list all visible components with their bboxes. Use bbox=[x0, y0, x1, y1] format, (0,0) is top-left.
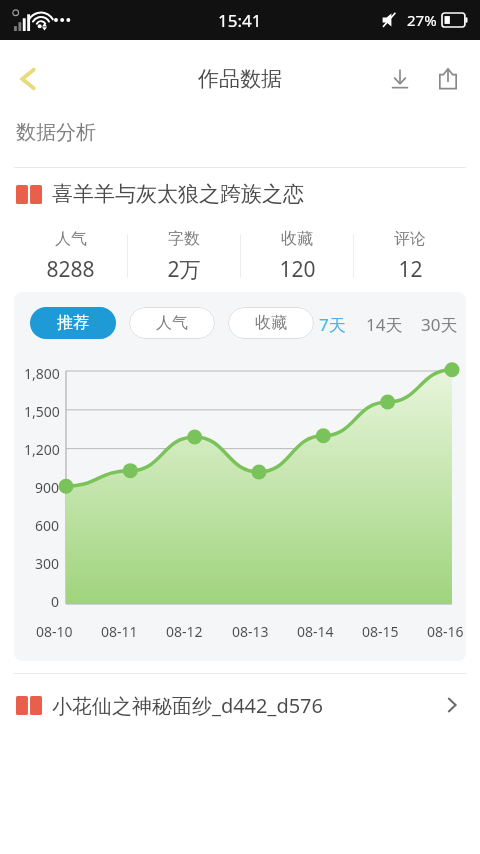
staticText: 08-10 bbox=[36, 622, 73, 641]
button[interactable]: Download bbox=[376, 55, 424, 103]
staticText: 08-13 bbox=[232, 622, 269, 641]
staticText: 1,200 bbox=[24, 440, 60, 459]
staticText: 600 bbox=[35, 516, 60, 535]
staticText: 1,800 bbox=[24, 364, 60, 383]
button[interactable]: 小花仙之神秘面纱_d442_d576 bbox=[0, 674, 480, 736]
staticText: 收藏 bbox=[281, 229, 313, 249]
button[interactable]: 人气 bbox=[129, 307, 215, 339]
staticText: 12 bbox=[398, 255, 423, 284]
staticText: 120 bbox=[279, 255, 316, 284]
button[interactable]: 喜羊羊与灰太狼之跨族之恋 bbox=[0, 168, 480, 220]
staticText: 1,500 bbox=[24, 402, 60, 421]
button[interactable]: Back bbox=[0, 51, 56, 107]
button[interactable]: 推荐 bbox=[30, 307, 116, 339]
staticText: 小花仙之神秘面纱_d442_d576 bbox=[52, 692, 442, 719]
staticText: 7天 bbox=[319, 313, 346, 336]
button[interactable]: 30天 bbox=[419, 313, 460, 336]
staticText: 300 bbox=[35, 554, 60, 573]
staticText: 08-11 bbox=[101, 622, 138, 641]
staticText: 900 bbox=[35, 478, 60, 497]
staticText: 作品数据 bbox=[198, 66, 282, 92]
staticText: 人气 bbox=[156, 313, 188, 333]
staticText: 30天 bbox=[421, 313, 458, 336]
staticText: 08-16 bbox=[427, 622, 464, 641]
button[interactable]: 14天 bbox=[364, 313, 405, 336]
staticText: 人气 bbox=[55, 229, 87, 249]
button[interactable]: Share bbox=[424, 55, 472, 103]
staticText: 数据分析 bbox=[16, 120, 96, 145]
staticText: 2万 bbox=[167, 255, 201, 284]
staticText: 8288 bbox=[46, 255, 95, 284]
staticText: 0 bbox=[51, 592, 60, 611]
staticText: 08-14 bbox=[297, 622, 334, 641]
staticText: 字数 bbox=[168, 229, 200, 249]
button[interactable]: 7天 bbox=[317, 313, 348, 336]
staticText: 推荐 bbox=[57, 313, 89, 333]
staticText: 15:41 bbox=[218, 9, 262, 32]
staticText: 08-15 bbox=[362, 622, 399, 641]
button[interactable]: 收藏 bbox=[228, 307, 314, 339]
staticText: 14天 bbox=[366, 313, 403, 336]
staticText: 评论 bbox=[394, 229, 426, 249]
staticText: 收藏 bbox=[255, 313, 287, 333]
staticText: 喜羊羊与灰太狼之跨族之恋 bbox=[52, 181, 304, 207]
staticText: 27% bbox=[407, 10, 437, 30]
staticText: 08-12 bbox=[166, 622, 203, 641]
